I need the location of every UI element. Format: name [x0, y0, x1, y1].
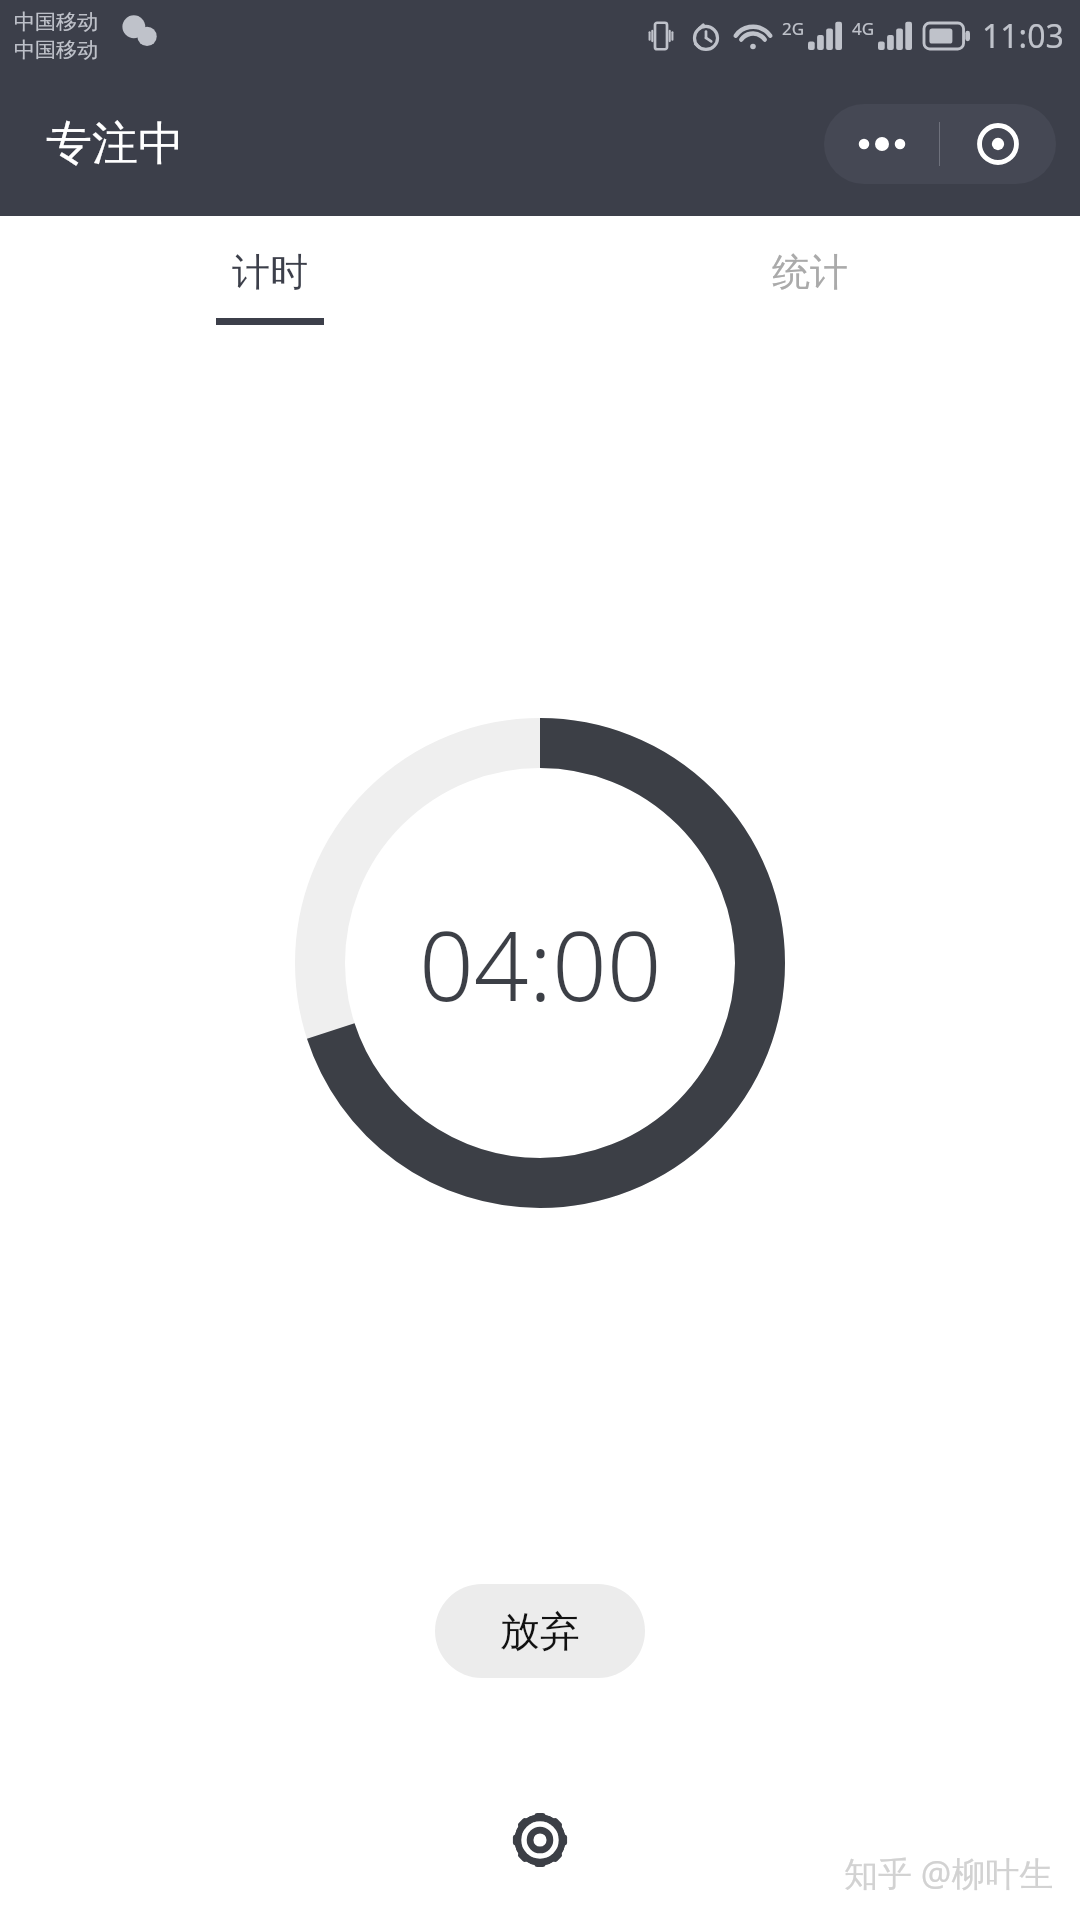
staticText: 专注中 — [46, 115, 184, 173]
button[interactable]: Settings — [498, 1798, 582, 1882]
button[interactable]: Close — [940, 104, 1056, 184]
staticText: 11:03 — [982, 14, 1064, 58]
button[interactable]: More — [824, 104, 939, 184]
staticText: 2G — [782, 17, 805, 40]
button[interactable]: 计时 — [0, 216, 540, 356]
staticText: 放弃 — [500, 1606, 580, 1656]
staticText: 中国移动 — [14, 9, 98, 35]
button[interactable]: 放弃 — [435, 1584, 645, 1678]
button[interactable]: 统计 — [540, 216, 1080, 356]
staticText: 4G — [852, 17, 875, 40]
staticText: 统计 — [772, 248, 848, 296]
staticText: 04:00 — [419, 898, 662, 1029]
staticText: 计时 — [232, 248, 308, 296]
staticText: 中国移动 — [14, 37, 98, 63]
staticText: 知乎 @柳叶生 — [844, 1850, 1054, 1896]
